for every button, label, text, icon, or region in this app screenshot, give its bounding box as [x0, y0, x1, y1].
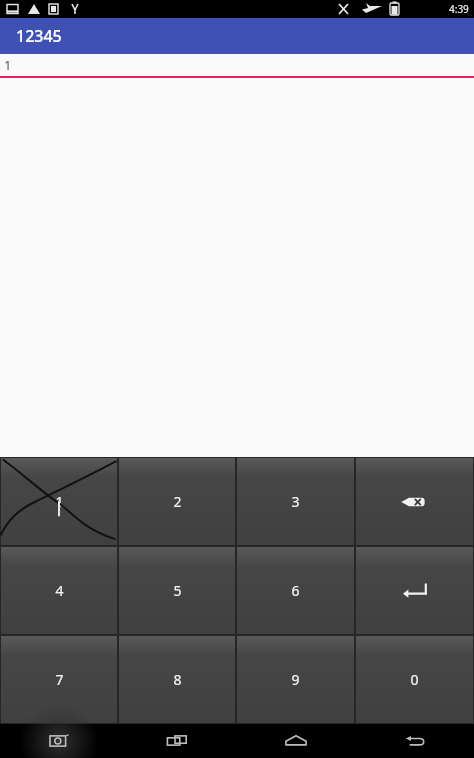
button[interactable]: 6 [237, 547, 354, 634]
button[interactable]: Enter [356, 547, 473, 634]
staticText: 3 [291, 492, 300, 511]
button[interactable]: 9 [237, 636, 354, 723]
button[interactable]: 5 [119, 547, 235, 634]
button[interactable]: 2 [119, 458, 235, 545]
button[interactable]: Delete [356, 458, 473, 545]
staticText: 8 [173, 670, 182, 689]
staticText: 4 [55, 581, 64, 600]
staticText: 4:39 [449, 2, 469, 16]
button[interactable]: 4 [1, 547, 117, 634]
button[interactable]: Back [355, 724, 474, 758]
button[interactable]: Camera [0, 724, 118, 758]
button[interactable]: 7 [1, 636, 117, 723]
staticText: 7 [55, 670, 64, 689]
button[interactable]: 8 [119, 636, 235, 723]
staticText: 0 [410, 670, 419, 689]
button[interactable]: 1 [1, 458, 117, 545]
button[interactable]: 0 [356, 636, 473, 723]
button[interactable]: Recents [118, 724, 236, 758]
staticText: 2 [173, 492, 182, 511]
staticText: 6 [291, 581, 300, 600]
button[interactable]: 1 [0, 54, 474, 78]
staticText: 1 [55, 492, 64, 511]
button[interactable]: 3 [237, 458, 354, 545]
staticText: 12345 [16, 25, 62, 47]
staticText: 1 [4, 56, 12, 74]
staticText: 9 [291, 670, 300, 689]
button[interactable]: Home [236, 724, 355, 758]
staticText: 5 [173, 581, 182, 600]
